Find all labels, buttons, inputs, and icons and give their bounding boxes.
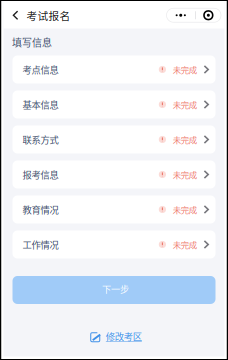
button[interactable]: 教育情况	[12, 195, 215, 223]
staticText: 未完成	[173, 238, 197, 251]
staticText: 未完成	[173, 98, 197, 111]
button[interactable]: 考点信息	[12, 55, 215, 83]
staticText: 联系方式	[22, 133, 58, 146]
button[interactable]: 修改考区	[86, 329, 142, 343]
button[interactable]: 报考信息	[12, 160, 215, 188]
staticText: 教育情况	[22, 203, 58, 216]
button[interactable]: 下一步	[12, 276, 215, 304]
staticText: 未完成	[173, 203, 197, 216]
staticText: 考试报名	[26, 7, 70, 23]
button[interactable]: Back	[3, 2, 26, 28]
staticText: 修改考区	[106, 329, 142, 343]
button[interactable]: Close mini program	[196, 8, 221, 22]
staticText: 基本信息	[22, 98, 58, 111]
staticText: 考点信息	[22, 63, 58, 76]
staticText: 未完成	[173, 63, 197, 76]
button[interactable]: 基本信息	[12, 90, 215, 118]
staticText: 未完成	[173, 133, 197, 146]
button[interactable]: 工作情况	[12, 230, 215, 258]
staticText: 工作情况	[22, 238, 58, 251]
staticText: 填写信息	[12, 35, 52, 49]
staticText: 下一步	[102, 282, 129, 295]
button[interactable]: 联系方式	[12, 125, 215, 153]
staticText: 报考信息	[22, 168, 58, 181]
staticText: 未完成	[173, 168, 197, 181]
button[interactable]: More options	[166, 8, 195, 22]
